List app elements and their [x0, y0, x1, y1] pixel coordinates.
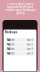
- staticText: Protect your assets against theft and re…: [5, 2, 35, 15]
- staticText: Saved: [26, 52, 33, 55]
- staticText: Backups: [5, 30, 17, 34]
- staticText: Saved: [26, 43, 33, 46]
- staticText: Wallet: [6, 38, 14, 42]
- staticText: Wallet: [6, 52, 14, 55]
- staticText: Wallet: [6, 47, 14, 51]
- staticText: Wallet: [6, 43, 14, 46]
- staticText: Saved: [26, 47, 33, 51]
- staticText: Saved: [26, 38, 33, 42]
